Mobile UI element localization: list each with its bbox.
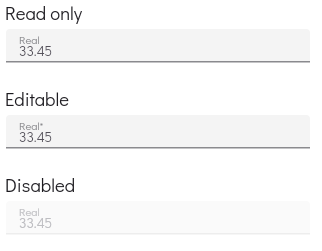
staticText: 33.45 xyxy=(19,41,53,59)
staticText: Editable xyxy=(5,87,69,111)
staticText: Real* xyxy=(19,118,44,132)
button[interactable]: Real xyxy=(6,29,310,63)
staticText: Real xyxy=(19,32,40,46)
staticText: 33.45 xyxy=(19,127,53,145)
staticText: 33.45 xyxy=(19,213,53,231)
staticText: Read only xyxy=(5,1,83,25)
button[interactable]: Real xyxy=(6,201,310,235)
staticText: Real xyxy=(19,204,40,218)
staticText: Editable xyxy=(5,87,69,111)
staticText: Disabled xyxy=(5,173,76,197)
staticText: Disabled xyxy=(5,173,76,197)
button[interactable]: Real* xyxy=(6,115,310,149)
staticText: Read only xyxy=(5,1,83,25)
